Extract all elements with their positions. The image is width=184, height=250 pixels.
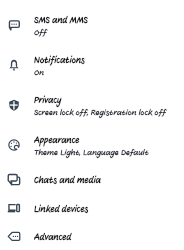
staticText: Chats and media — [34, 175, 101, 185]
button[interactable]: Privacy — [0, 85, 184, 125]
staticText: SMS and MMS — [34, 15, 88, 25]
staticText: Linked devices — [34, 204, 89, 214]
staticText: Theme Light, Language Default — [34, 148, 149, 158]
staticText: Screen lock off, Registration lock off — [34, 108, 167, 118]
button[interactable]: Notifications — [0, 45, 184, 85]
staticText: Advanced — [34, 232, 72, 242]
staticText: Off — [34, 28, 47, 38]
staticText: On — [34, 68, 44, 78]
button[interactable]: Advanced — [0, 223, 184, 250]
button[interactable]: SMS and MMS — [0, 5, 184, 45]
button[interactable]: Linked devices — [0, 194, 184, 223]
button[interactable]: Appearance — [0, 125, 184, 165]
staticText: Appearance — [34, 135, 80, 145]
staticText: Notifications — [34, 55, 85, 65]
staticText: Privacy — [34, 95, 62, 105]
button[interactable]: Chats and media — [0, 165, 184, 194]
